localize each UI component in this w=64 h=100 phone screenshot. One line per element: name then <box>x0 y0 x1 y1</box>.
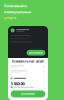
staticText: Оплачивайте <box>4 4 27 8</box>
button[interactable]: Оплатить <box>11 90 45 97</box>
staticText: Оплатить <box>21 92 35 96</box>
staticText: коммунальные <box>4 10 31 14</box>
staticText: Оплатить <box>29 51 43 54</box>
staticText: услуги <box>4 16 16 20</box>
staticText: Коммунальные услуги <box>12 60 44 63</box>
staticText: 3 360.00 <box>11 81 25 86</box>
button[interactable]: Оплатить <box>27 50 45 56</box>
